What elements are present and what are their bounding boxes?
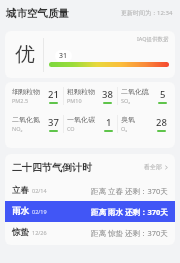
staticText: 02/14 [32,187,47,194]
button[interactable]: 粗颗粒物 [64,87,117,104]
button[interactable]: 立春 [5,180,175,201]
staticText: 02/19 [32,208,47,215]
staticText: 二十四节气倒计时 [12,161,92,174]
staticText: 惊蛰 [12,227,29,238]
staticText: 雨水 [12,206,29,217]
button[interactable]: 二氧化氮 [9,115,63,132]
staticText: PM10 [67,97,82,104]
staticText: NO₂ [12,125,23,132]
staticText: 12/26 [32,229,47,236]
staticText: 5 [160,88,166,101]
staticText: 臭氧 [121,115,135,124]
staticText: 更新时间为：12:34 [121,9,173,17]
button[interactable]: 惊蛰 [5,222,175,243]
button[interactable]: 二十四节气倒计时 [5,154,175,180]
button[interactable]: 雨水 [5,201,175,222]
staticText: 31 [59,51,68,61]
staticText: 城市空气质量 [6,7,69,20]
staticText: 看全部 [144,163,162,171]
staticText: 粗颗粒物 [67,87,95,96]
other: 查看全部 [164,165,169,170]
staticText: 一氧化碳 [67,115,95,124]
staticText: 细颗粒物 [12,87,40,96]
staticText: 立春 [12,185,29,196]
staticText: O₃ [121,125,128,132]
staticText: 28 [156,116,167,129]
staticText: 二氧化氮 [12,115,40,124]
staticText: 距离 立春 还剩：370天 [91,186,168,196]
staticText: 21 [48,88,59,101]
button[interactable]: 臭氧 [118,115,171,132]
staticText: SO₂ [121,97,131,104]
button[interactable]: 一氧化碳 [64,115,117,132]
staticText: 距离 惊蛰 还剩：370天 [91,228,168,238]
staticText: PM2.5 [12,97,29,104]
staticText: CO [67,125,75,132]
staticText: 37 [48,116,59,129]
button[interactable]: 细颗粒物 [9,87,63,104]
staticText: 1 [106,116,112,129]
staticText: 优 [15,42,35,67]
button[interactable]: 二氧化硫 [118,87,171,104]
staticText: IAQ提供数据 [137,35,169,43]
staticText: 距离 雨水 还剩：370天 [91,207,168,217]
button[interactable]: 优 [5,31,175,78]
staticText: 二氧化硫 [121,87,149,96]
staticText: 38 [102,88,113,101]
